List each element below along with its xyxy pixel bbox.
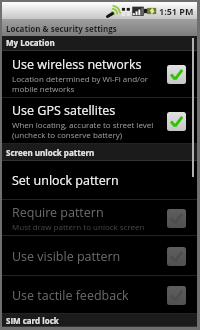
- button[interactable]: Use visible pattern: [2, 236, 197, 276]
- staticText: Location determined by Wi-Fi and/or mobi…: [12, 73, 149, 94]
- staticText: Require pattern: [12, 204, 104, 221]
- button[interactable]: Use tactile feedback: [2, 276, 197, 314]
- button[interactable]: Use GPS satellites: [2, 98, 197, 144]
- staticText: Use wireless networks: [12, 56, 142, 73]
- button[interactable]: Use wireless networks: [2, 51, 197, 98]
- staticText: Location & security settings: [6, 23, 117, 34]
- staticText: Use GPS satellites: [12, 102, 116, 119]
- staticText: Use tactile feedback: [12, 287, 129, 304]
- staticText: Screen unlock pattern: [6, 147, 95, 158]
- staticText: My Location: [6, 37, 55, 48]
- button[interactable]: Require pattern: [2, 200, 197, 236]
- staticText: Use visible pattern: [12, 248, 121, 265]
- staticText: SIM card lock: [6, 315, 59, 326]
- staticText: When locating, accurate to street level …: [12, 119, 154, 140]
- button[interactable]: Set unlock pattern: [2, 161, 197, 200]
- staticText: 1:51 PM: [159, 5, 194, 17]
- staticText: Must draw pattern to unlock screen: [12, 221, 145, 232]
- staticText: Set unlock pattern: [12, 172, 119, 189]
